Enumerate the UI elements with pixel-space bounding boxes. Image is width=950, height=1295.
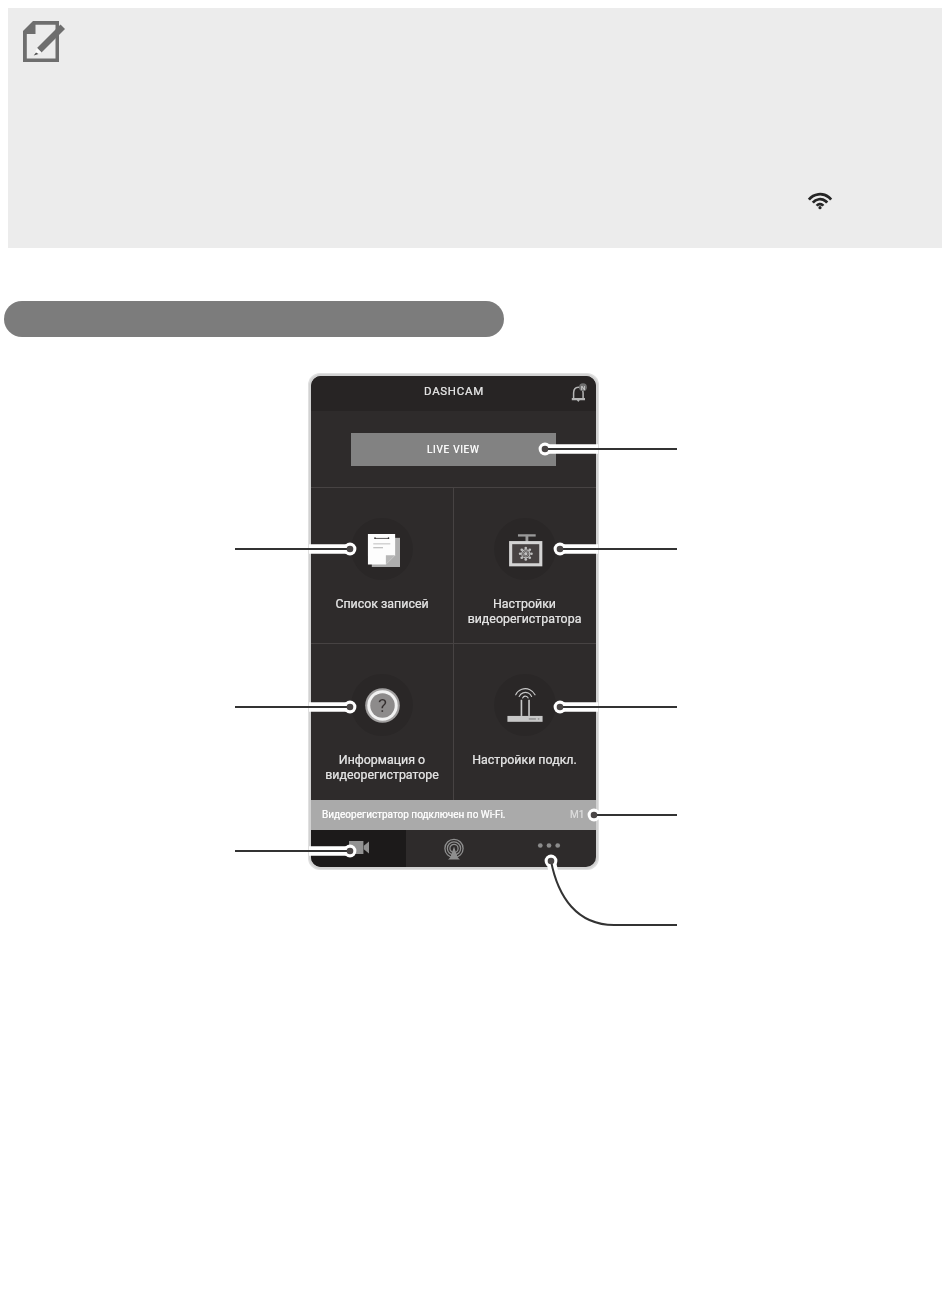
button[interactable]: Notifications xyxy=(567,382,589,404)
button[interactable]: LIVE VIEW xyxy=(351,433,556,466)
button[interactable]: Camera xyxy=(311,830,406,867)
button[interactable]: ? xyxy=(311,643,453,800)
staticText: Список записей xyxy=(311,596,453,611)
staticText: ? xyxy=(378,694,387,716)
staticText: Настройки подкл. xyxy=(453,752,596,767)
button[interactable]: Broadcast xyxy=(406,830,501,867)
staticText: Информация о видеорегистраторе xyxy=(311,752,453,782)
button[interactable]: More options xyxy=(501,830,596,867)
button[interactable]: Настройки видеорегистратора xyxy=(453,487,596,643)
staticText: N xyxy=(581,384,586,391)
staticText: Настройки видеорегистратора xyxy=(453,596,596,626)
staticText: DASHCAM xyxy=(424,384,484,397)
button[interactable]: Настройки подкл. xyxy=(453,643,596,800)
staticText: Видеорегистратор подключен по Wi-Fi. xyxy=(322,809,506,821)
staticText: M1 xyxy=(570,809,585,821)
button[interactable]: Список записей xyxy=(311,487,453,643)
staticText: LIVE VIEW xyxy=(427,444,480,456)
